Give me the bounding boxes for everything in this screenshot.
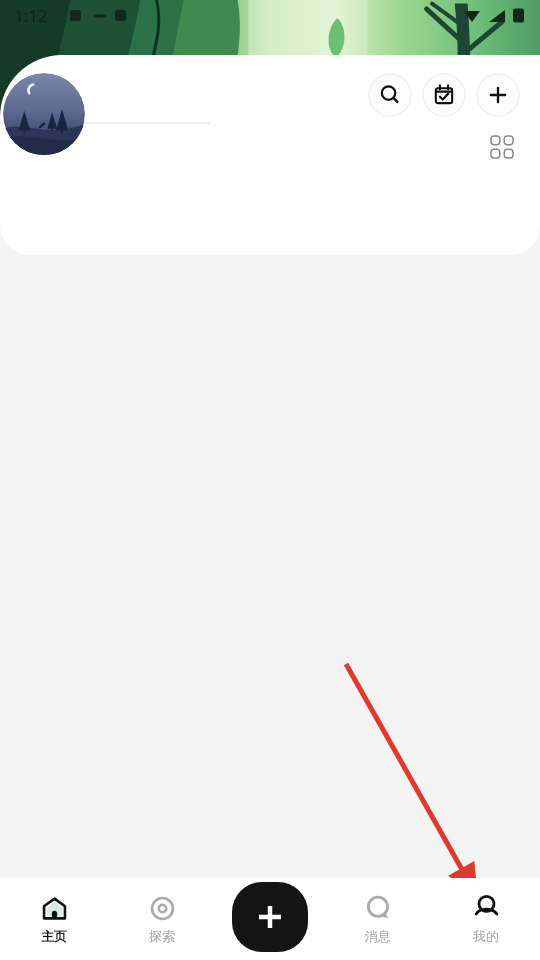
button[interactable]: 消息 [324, 878, 432, 960]
button[interactable]: 探索 [108, 878, 216, 960]
staticText: 我的 [473, 928, 499, 944]
staticText: 消息 [365, 928, 391, 944]
button[interactable]: 主页 [0, 878, 108, 960]
button[interactable]: Calendar [422, 73, 466, 117]
button[interactable]: Search [368, 73, 412, 117]
button[interactable]: Create [232, 882, 308, 952]
staticText: 主页 [41, 928, 67, 944]
button[interactable]: Profile avatar [3, 73, 85, 155]
button[interactable]: 我的 [432, 878, 540, 960]
staticText: 探索 [149, 928, 175, 944]
button[interactable]: Add [476, 73, 520, 117]
staticText: 1:12 [14, 4, 48, 27]
button[interactable]: Grid view [482, 127, 522, 167]
